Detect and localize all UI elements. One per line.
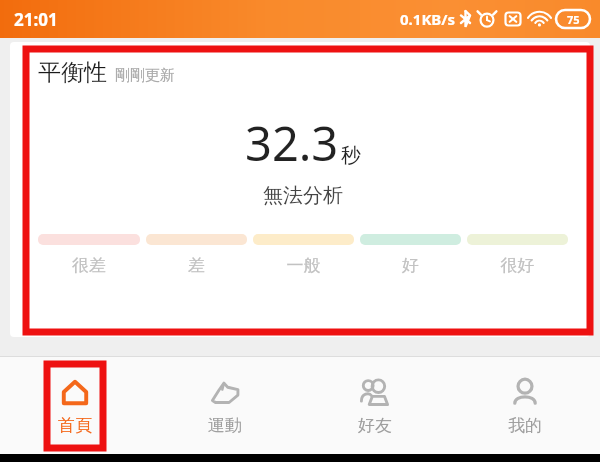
- staticText: 平衡性: [38, 58, 107, 87]
- staticText: 運動: [208, 415, 242, 436]
- staticText: 剛剛更新: [115, 66, 175, 85]
- staticText: 32.3: [245, 111, 339, 175]
- staticText: 秒: [341, 143, 361, 168]
- staticText: 一般: [253, 255, 354, 276]
- staticText: 0.1KB/s: [400, 9, 456, 29]
- staticText: 很差: [38, 255, 140, 276]
- staticText: 75: [567, 12, 580, 27]
- staticText: 21:01: [14, 8, 58, 31]
- staticText: 我的: [508, 415, 542, 436]
- staticText: 首頁: [58, 415, 92, 436]
- staticText: 很好: [467, 255, 568, 276]
- button[interactable]: 好友: [347, 364, 403, 448]
- staticText: 好友: [358, 415, 392, 436]
- button[interactable]: 首頁: [47, 364, 103, 448]
- staticText: 無法分析: [38, 183, 568, 208]
- button[interactable]: 我的: [497, 364, 553, 448]
- button[interactable]: 運動: [197, 364, 253, 448]
- staticText: 差: [146, 255, 247, 276]
- staticText: 好: [360, 255, 461, 276]
